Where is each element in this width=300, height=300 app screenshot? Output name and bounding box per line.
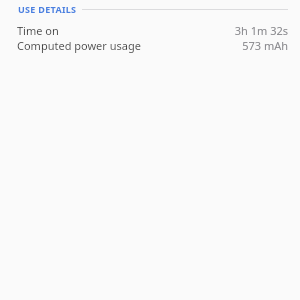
- staticText: USE DETAILS: [18, 3, 77, 15]
- button[interactable]: Time on: [0, 23, 300, 38]
- staticText: 3h 1m 32s: [234, 23, 288, 38]
- staticText: Computed power usage: [17, 38, 141, 53]
- staticText: Time on: [17, 23, 59, 38]
- staticText: 573 mAh: [242, 38, 288, 53]
- button[interactable]: Computed power usage: [0, 38, 300, 53]
